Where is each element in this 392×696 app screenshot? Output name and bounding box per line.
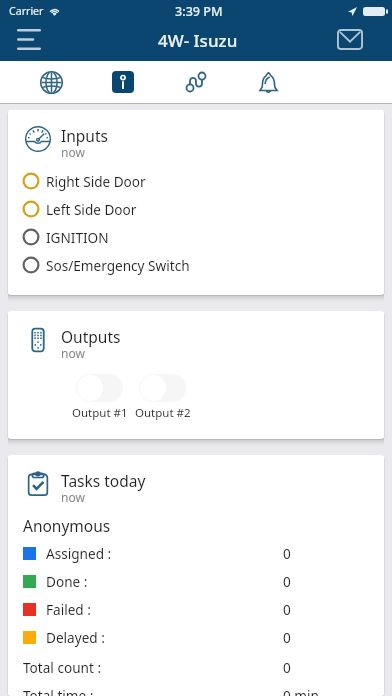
staticText: Done : [46,572,88,591]
staticText: Anonymous [23,515,111,536]
staticText: Output #1 [72,405,128,421]
staticText: Left Side Door [46,200,137,219]
button[interactable]: Alerts [232,61,304,103]
staticText: Total count : [23,658,102,677]
staticText: 0 [283,658,291,677]
button[interactable]: Done : [8,567,384,595]
button[interactable]: Total count : [8,653,384,681]
staticText: 4W- Isuzu [158,29,238,52]
button[interactable]: Total time : [8,681,384,696]
button[interactable]: Info [87,61,159,103]
staticText: now [61,144,85,160]
staticText: 3:39 PM [175,3,223,20]
button[interactable]: Delayed : [8,623,384,651]
staticText: now [61,345,85,361]
staticText: Output #2 [135,405,191,421]
button[interactable]: Output #1 [76,374,123,402]
staticText: Sos/Emergency Switch [46,256,190,275]
button[interactable]: Assigned : [8,539,384,567]
staticText: 0 [283,628,291,647]
staticText: Carrier [9,4,44,18]
button[interactable]: Left Side Door [8,195,384,223]
staticText: Tasks today [61,470,146,491]
staticText: Right Side Door [46,172,146,191]
staticText: Total time : [23,686,94,696]
staticText: Assigned : [46,544,112,563]
button[interactable]: Output #2 [139,374,186,402]
button[interactable]: IGNITION [8,223,384,251]
staticText: Outputs [61,326,121,347]
button[interactable]: Trips [160,61,232,103]
staticText: 0 min [283,686,319,696]
staticText: IGNITION [46,228,109,247]
button[interactable]: Right Side Door [8,167,384,195]
staticText: 0 [283,572,291,591]
button[interactable]: Menu [5,22,53,60]
staticText: 0 [283,544,291,563]
staticText: Inputs [61,125,108,146]
button[interactable]: Messages [329,20,371,58]
button[interactable]: Map [15,61,87,103]
button[interactable]: Failed : [8,595,384,623]
staticText: 0 [283,600,291,619]
button[interactable]: Sos/Emergency Switch [8,251,384,279]
staticText: Delayed : [46,628,105,647]
staticText: now [61,489,85,505]
staticText: Failed : [46,600,91,619]
